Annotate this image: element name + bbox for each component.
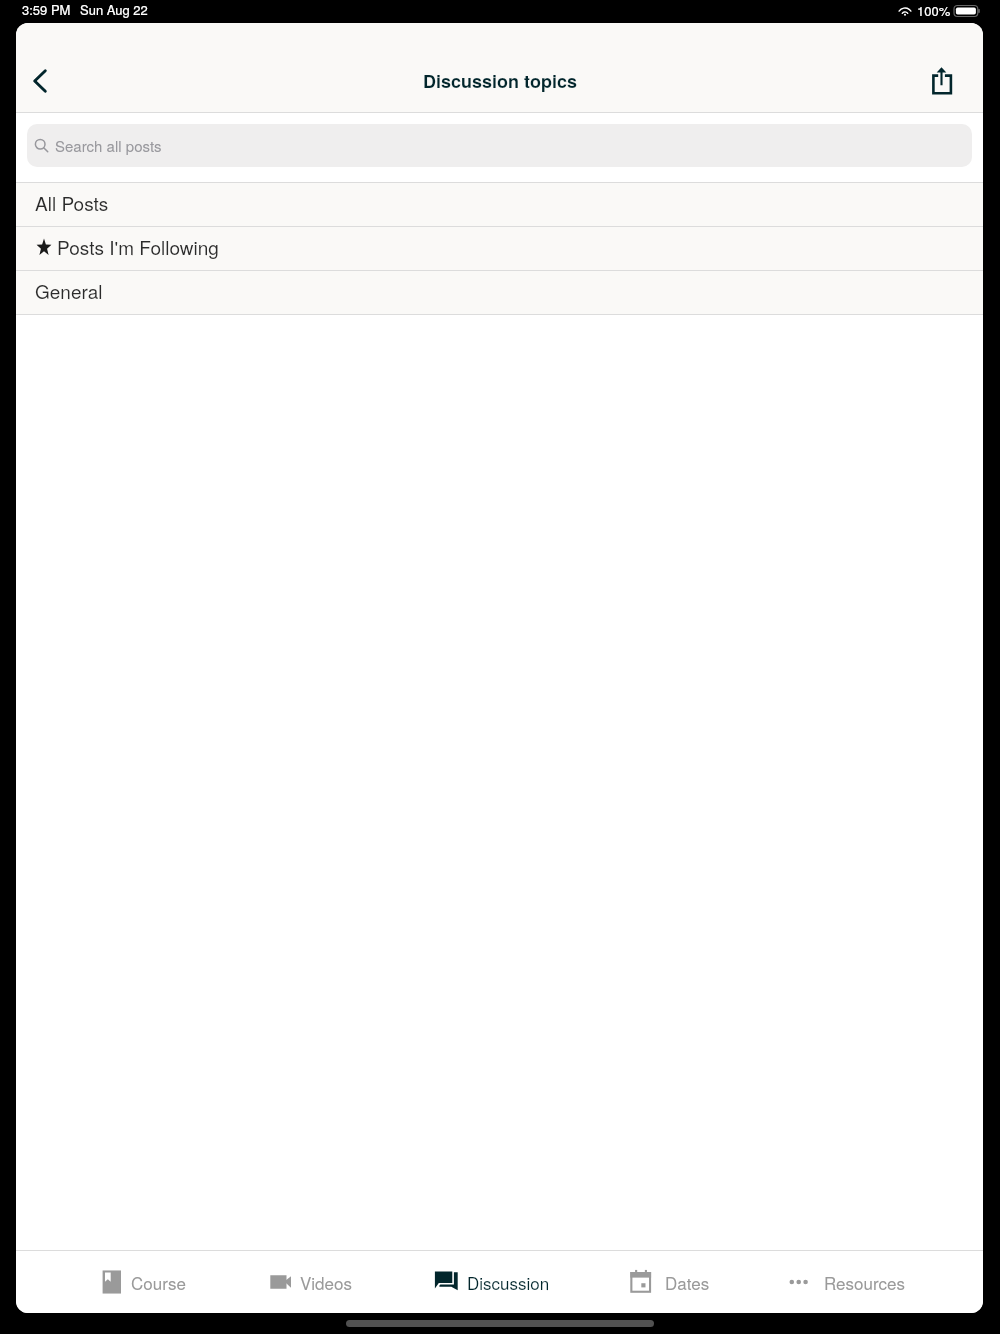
button[interactable]: Resources	[787, 1251, 905, 1313]
button[interactable]: Videos	[263, 1251, 352, 1313]
button[interactable]: Course	[94, 1251, 186, 1313]
staticText: Videos	[300, 1270, 352, 1294]
button[interactable]: All Posts	[16, 183, 983, 226]
button[interactable]: General	[16, 271, 983, 314]
staticText: 3:59 PM	[22, 0, 71, 19]
button[interactable]: Share	[920, 58, 964, 102]
button[interactable]: Posts I'm Following	[16, 227, 983, 270]
staticText: 100%	[917, 1, 951, 20]
button[interactable]: Discussion	[430, 1251, 550, 1313]
button[interactable]: Back	[17, 58, 63, 104]
staticText: General	[35, 277, 103, 304]
staticText: Discussion	[467, 1270, 550, 1294]
staticText: Course	[131, 1270, 186, 1294]
staticText: Dates	[665, 1270, 710, 1294]
staticText: Sun Aug 22	[80, 0, 148, 19]
button[interactable]: Search all posts	[27, 124, 972, 167]
staticText: Resources	[824, 1270, 905, 1294]
staticText: Search all posts	[55, 135, 162, 156]
staticText: All Posts	[35, 189, 109, 216]
staticText: Posts I'm Following	[57, 233, 219, 260]
staticText: Discussion topics	[423, 68, 577, 94]
button[interactable]: Dates	[628, 1251, 710, 1313]
